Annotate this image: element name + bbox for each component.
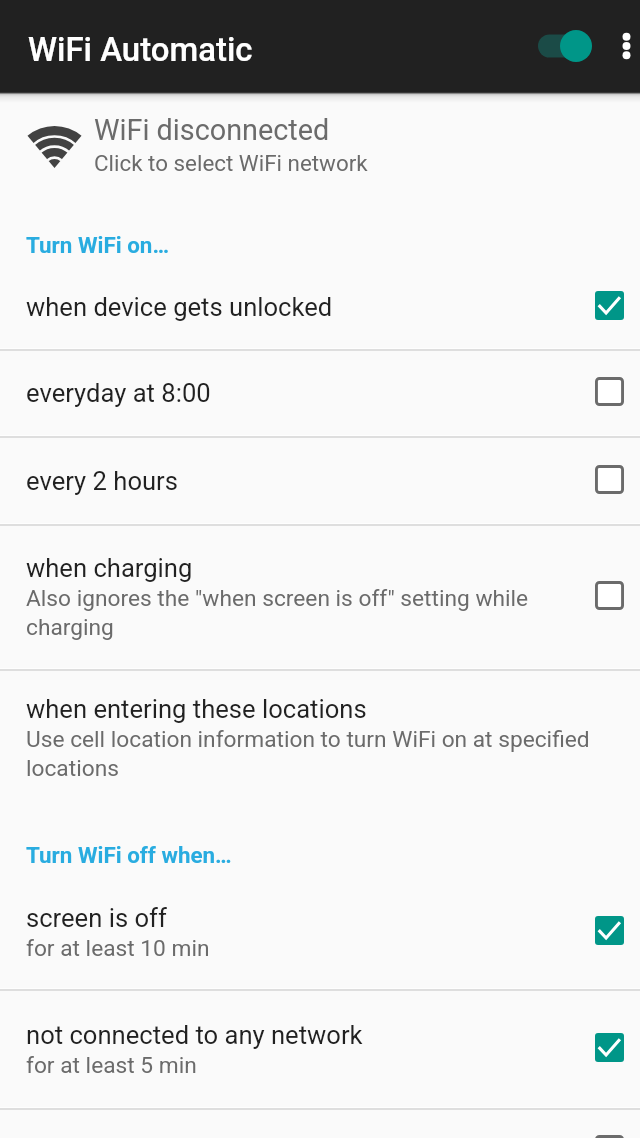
- staticText: when charging: [26, 553, 193, 583]
- staticText: when device gets unlocked: [26, 292, 333, 322]
- staticText: Turn WiFi on…: [26, 232, 169, 258]
- button[interactable]: WiFi disconnected: [0, 103, 640, 192]
- button[interactable]: Toggle setting: [585, 908, 633, 952]
- button[interactable]: Toggle setting: [585, 369, 633, 413]
- staticText: for at least 10 min: [26, 933, 210, 962]
- button[interactable]: when mobile data is on: [0, 1110, 640, 1138]
- staticText: Also ignores the "when screen is off" se…: [26, 583, 569, 641]
- button[interactable]: Toggle setting: [585, 1127, 633, 1138]
- button[interactable]: WiFi Automatic on/off: [533, 17, 597, 75]
- button[interactable]: Toggle setting: [585, 1025, 633, 1069]
- button[interactable]: Toggle setting: [585, 283, 633, 327]
- staticText: for at least 5 min: [26, 1050, 197, 1079]
- staticText: screen is off: [26, 903, 167, 933]
- button[interactable]: when entering these locations: [0, 671, 640, 804]
- button[interactable]: Toggle setting: [585, 573, 633, 617]
- button[interactable]: screen is off: [0, 876, 640, 988]
- staticText: Turn WiFi off when…: [26, 842, 232, 868]
- staticText: Use cell location information to turn Wi…: [26, 724, 633, 782]
- button[interactable]: everyday at 8:00: [0, 351, 640, 435]
- staticText: everyday at 8:00: [26, 378, 211, 408]
- staticText: every 2 hours: [26, 466, 178, 496]
- staticText: Click to select WiFi network: [94, 150, 368, 176]
- staticText: when entering these locations: [26, 694, 367, 724]
- staticText: WiFi disconnected: [94, 113, 330, 147]
- button[interactable]: when device gets unlocked: [0, 266, 640, 348]
- button[interactable]: Toggle setting: [585, 457, 633, 501]
- staticText: not connected to any network: [26, 1020, 363, 1050]
- button[interactable]: not connected to any network: [0, 991, 640, 1107]
- button[interactable]: when charging: [0, 526, 640, 668]
- staticText: WiFi Automatic: [28, 30, 253, 69]
- button[interactable]: every 2 hours: [0, 438, 640, 523]
- button[interactable]: More options: [613, 11, 640, 81]
